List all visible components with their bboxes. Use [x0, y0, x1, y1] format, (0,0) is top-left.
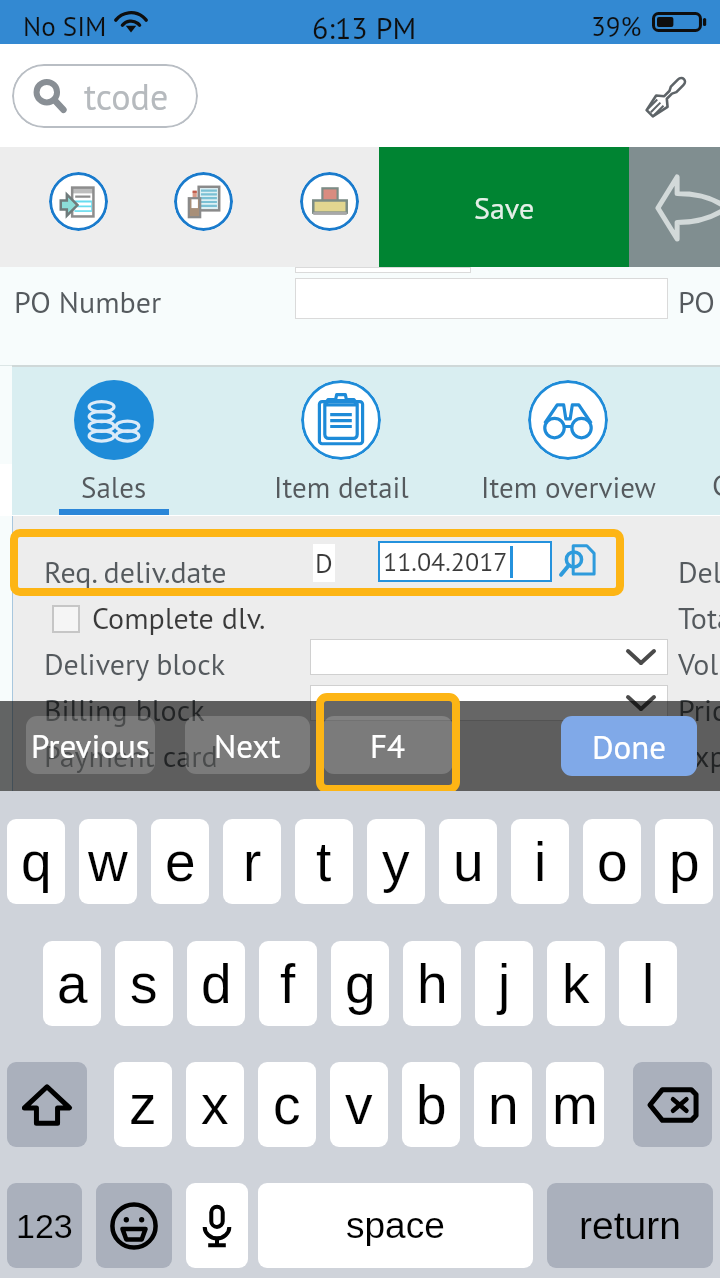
button[interactable]: b — [402, 1062, 460, 1147]
staticText: PO Number — [14, 282, 162, 321]
staticText: Complete dlv. — [92, 598, 266, 637]
button[interactable]: o — [583, 819, 641, 904]
button[interactable]: Shift — [7, 1062, 87, 1147]
staticText: C — [712, 465, 720, 504]
button[interactable]: Sales — [1, 367, 227, 515]
button[interactable]: F4 — [323, 716, 453, 774]
button[interactable]: Save — [379, 147, 629, 267]
button[interactable]: g — [331, 941, 389, 1026]
staticText: n — [488, 1074, 519, 1135]
staticText: m — [552, 1074, 598, 1135]
button[interactable]: tcode — [12, 64, 198, 128]
staticText: Item overview — [481, 468, 656, 506]
button[interactable]: Item overview — [455, 367, 681, 515]
staticText: z — [129, 1074, 157, 1135]
staticText: e — [165, 831, 196, 892]
button[interactable]: Partner — [174, 172, 233, 231]
staticText: 11.04.2017 — [383, 545, 508, 579]
staticText: l — [642, 953, 655, 1014]
staticText: tcode — [84, 73, 169, 120]
button[interactable]: x — [186, 1062, 244, 1147]
button[interactable]: f — [259, 941, 317, 1026]
button[interactable] — [310, 685, 668, 721]
button[interactable]: j — [475, 941, 533, 1026]
button[interactable]: Create with reference — [49, 172, 108, 231]
button[interactable]: Backspace — [633, 1062, 712, 1147]
staticText: j — [498, 953, 511, 1014]
staticText: Billing block — [44, 690, 205, 729]
button[interactable]: Next — [185, 716, 310, 774]
button[interactable]: r — [223, 819, 281, 904]
staticText: Sales — [81, 468, 147, 506]
staticText: Payment card — [44, 736, 218, 775]
staticText: c — [273, 1074, 301, 1135]
staticText: Req. deliv.date — [44, 552, 227, 591]
staticText: g — [345, 953, 376, 1014]
button[interactable]: n — [474, 1062, 532, 1147]
staticText: v — [345, 1074, 373, 1135]
button[interactable]: Previous — [26, 716, 155, 774]
button[interactable]: 11.04.2017 — [378, 541, 552, 582]
button[interactable]: e — [151, 819, 209, 904]
button[interactable]: Item detail — [228, 367, 454, 515]
staticText: p — [669, 831, 700, 892]
staticText: Exp — [678, 736, 720, 775]
button[interactable]: y — [367, 819, 425, 904]
button[interactable]: Emoji — [96, 1183, 172, 1268]
staticText: D — [315, 546, 333, 581]
button[interactable]: p — [655, 819, 713, 904]
button[interactable] — [310, 639, 668, 675]
staticText: space — [346, 1205, 445, 1246]
button[interactable]: 123 — [7, 1183, 82, 1268]
staticText: Tota — [678, 598, 720, 637]
staticText: h — [417, 953, 448, 1014]
staticText: b — [416, 1074, 447, 1135]
button[interactable]: i — [511, 819, 569, 904]
button[interactable]: Developer tools — [636, 65, 698, 127]
button[interactable]: v — [330, 1062, 388, 1147]
staticText: 6:13 PM — [312, 8, 417, 44]
staticText: Item detail — [274, 468, 409, 506]
button[interactable]: k — [547, 941, 605, 1026]
button[interactable]: Value help — [558, 542, 596, 580]
staticText: f — [280, 953, 296, 1014]
staticText: Delivery block — [44, 644, 226, 683]
button[interactable]: u — [439, 819, 497, 904]
staticText: t — [316, 831, 332, 892]
button[interactable]: c — [258, 1062, 316, 1147]
staticText: Done — [592, 725, 667, 768]
staticText: w — [88, 831, 128, 892]
button[interactable]: Done — [561, 716, 697, 776]
staticText: 39% — [591, 9, 642, 44]
button[interactable]: l — [619, 941, 677, 1026]
staticText: 123 — [16, 1207, 73, 1245]
button[interactable]: q — [7, 819, 65, 904]
staticText: PO — [678, 282, 715, 321]
button[interactable]: s — [115, 941, 173, 1026]
button[interactable] — [295, 278, 668, 319]
staticText: u — [453, 831, 484, 892]
button[interactable]: space — [258, 1183, 533, 1268]
button[interactable]: Dictate — [186, 1183, 248, 1268]
button[interactable]: m — [546, 1062, 604, 1147]
staticText: a — [57, 953, 88, 1014]
button[interactable]: Back — [629, 147, 720, 267]
button[interactable]: a — [43, 941, 101, 1026]
button[interactable]: z — [114, 1062, 172, 1147]
button[interactable]: Print — [300, 172, 359, 231]
staticText: No SIM — [23, 9, 107, 44]
staticText: F4 — [370, 724, 406, 767]
button[interactable]: d — [187, 941, 245, 1026]
staticText: d — [201, 953, 232, 1014]
staticText: Volu — [678, 644, 720, 683]
staticText: Pric — [678, 690, 720, 729]
staticText: Next — [214, 724, 281, 767]
staticText: i — [534, 831, 547, 892]
button[interactable]: t — [295, 819, 353, 904]
button[interactable]: h — [403, 941, 461, 1026]
staticText: s — [130, 953, 158, 1014]
button[interactable]: return — [547, 1183, 713, 1268]
staticText: Deli — [678, 552, 720, 591]
button[interactable]: w — [79, 819, 137, 904]
button[interactable] — [52, 605, 80, 633]
